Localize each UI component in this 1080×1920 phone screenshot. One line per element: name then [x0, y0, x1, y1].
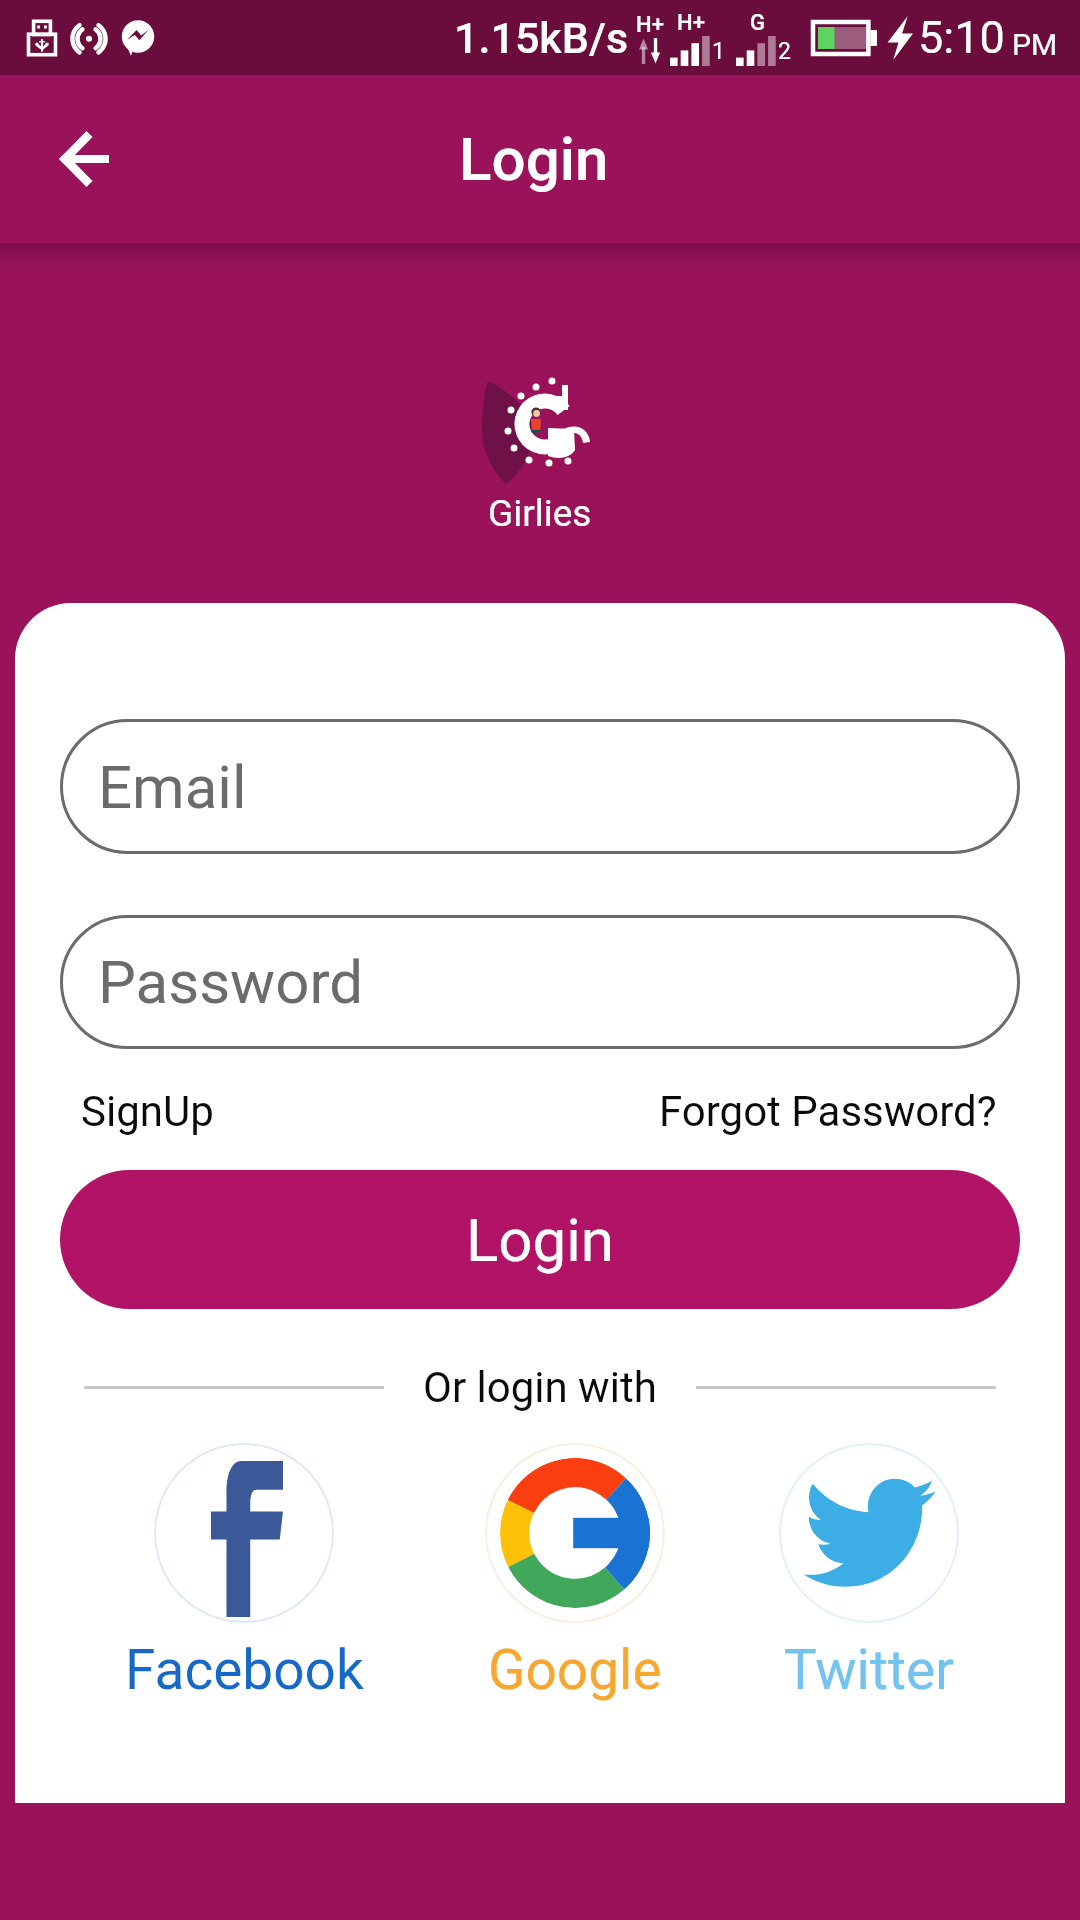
staticText: 2 — [778, 38, 791, 65]
staticText: Email — [98, 752, 247, 822]
button[interactable]: Back — [44, 119, 124, 199]
staticText: Girlies — [488, 492, 592, 535]
button[interactable]: Twitter — [749, 1443, 989, 1702]
button[interactable]: Email — [60, 719, 1020, 854]
staticText: Facebook — [125, 1638, 364, 1702]
staticText: Login — [466, 1205, 614, 1275]
button[interactable]: Password — [60, 915, 1020, 1049]
button[interactable]: SignUp — [81, 1087, 214, 1136]
staticText: H+ — [677, 10, 705, 36]
staticText: Login — [459, 124, 609, 194]
staticText: 1.15kB/s — [454, 13, 629, 63]
button[interactable]: Google — [455, 1443, 695, 1702]
staticText: 1 — [712, 38, 725, 65]
button[interactable]: Login — [60, 1170, 1020, 1309]
button[interactable]: Facebook — [124, 1443, 364, 1702]
staticText: Password — [98, 947, 364, 1017]
button[interactable]: Forgot Password? — [659, 1087, 997, 1136]
staticText: Google — [488, 1638, 662, 1702]
staticText: Or login with — [423, 1363, 657, 1412]
staticText: H+ — [636, 12, 664, 38]
staticText: PM — [1012, 27, 1058, 62]
staticText: Twitter — [784, 1638, 954, 1702]
staticText: 5:10 — [918, 11, 1005, 64]
staticText: G — [750, 10, 765, 36]
